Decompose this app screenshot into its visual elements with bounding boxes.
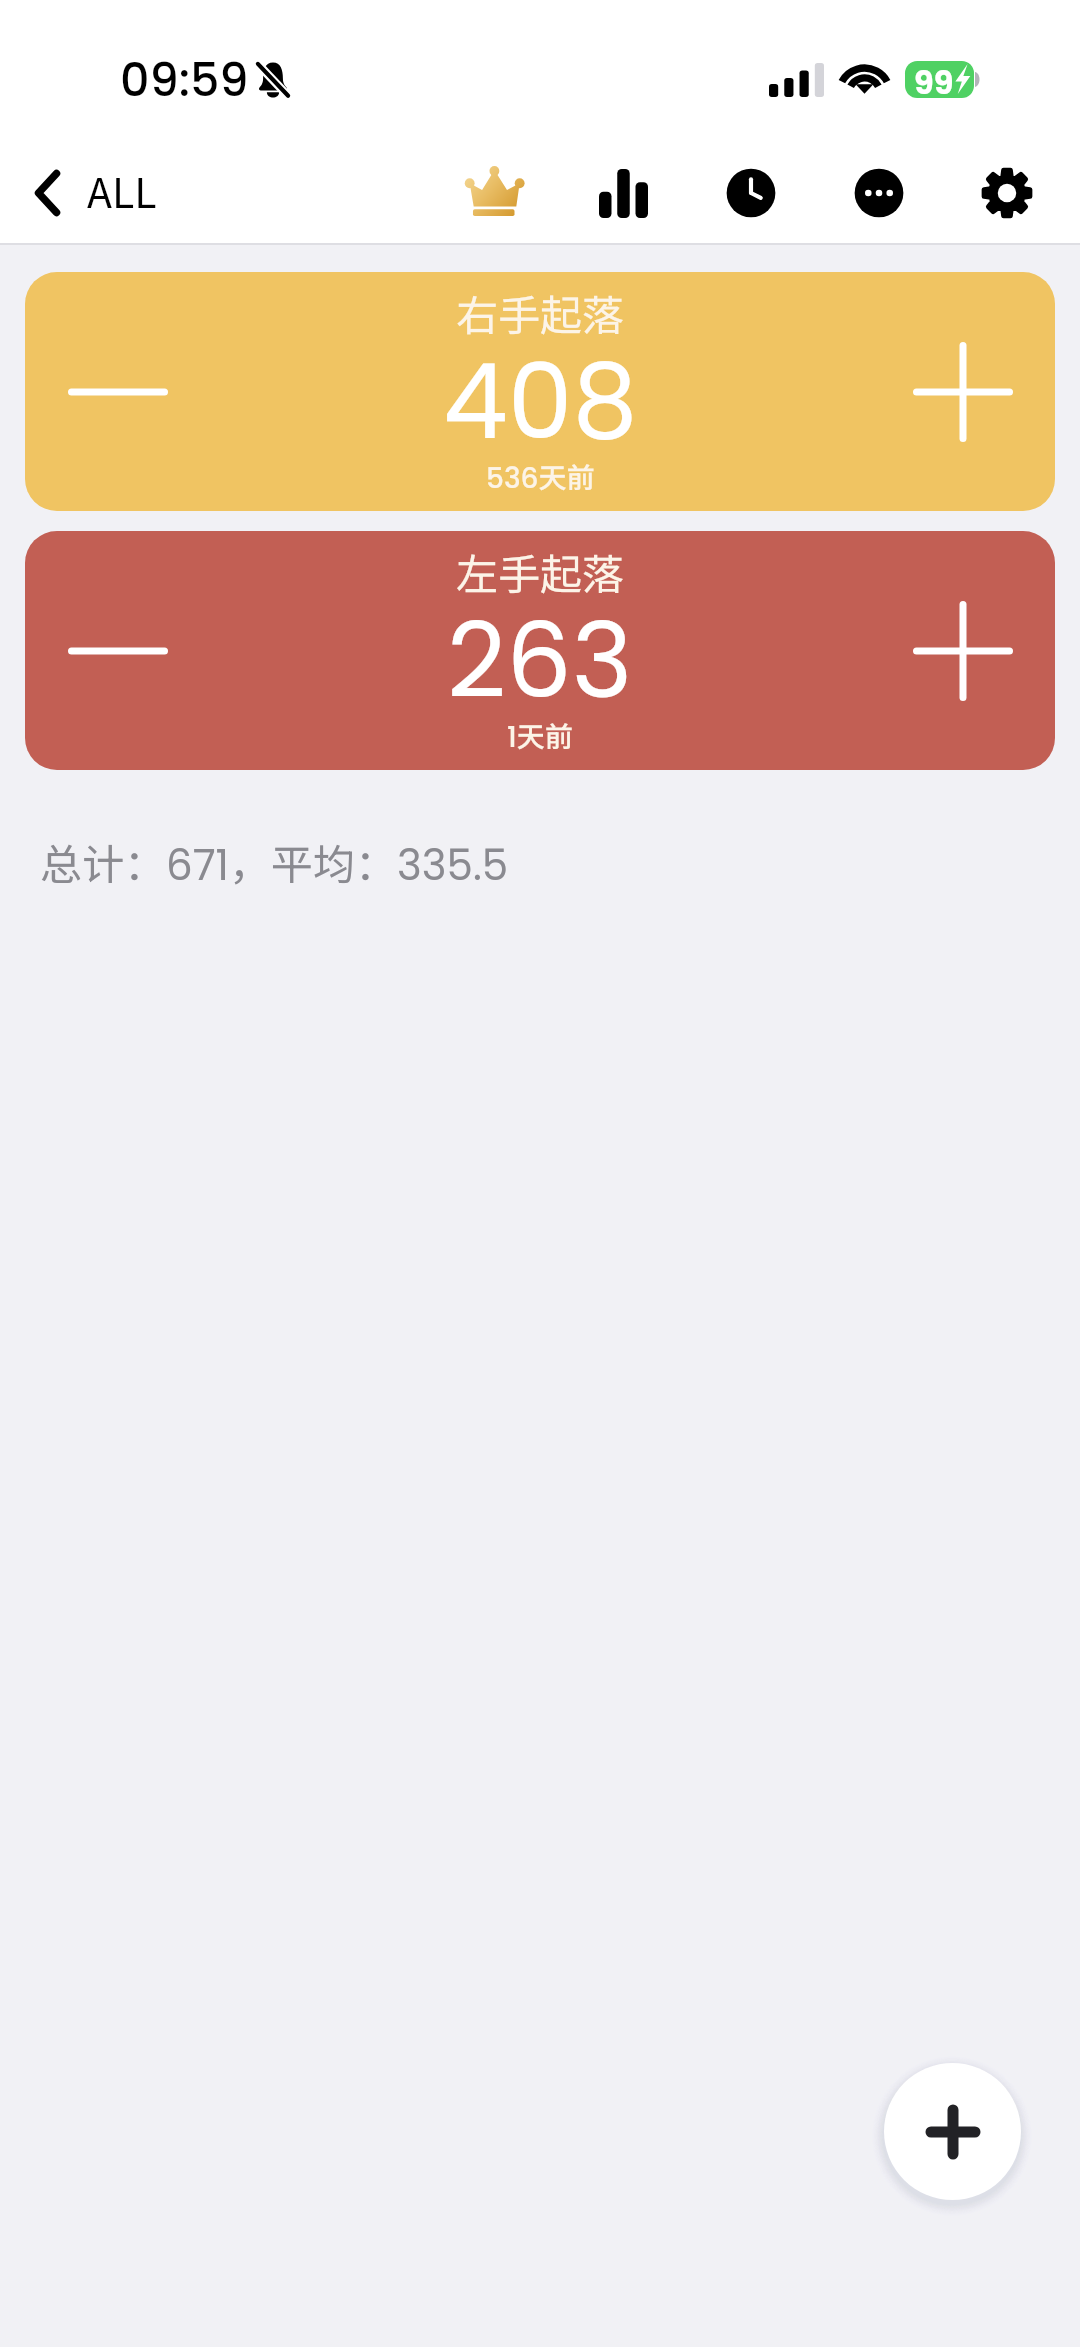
button[interactable]: ALL — [0, 145, 173, 241]
button[interactable]: Statistics — [582, 152, 664, 234]
staticText: 408 — [443, 330, 638, 474]
staticText: ALL — [87, 160, 157, 219]
staticText: 右手起落 — [456, 282, 625, 343]
button[interactable]: History — [710, 152, 792, 234]
button[interactable]: Decrement — [53, 586, 183, 716]
staticText: 09:59 — [120, 48, 249, 112]
staticText: 总计：671，平均：335.5 — [40, 831, 509, 894]
staticText: 263 — [447, 589, 633, 733]
button[interactable]: 左手起落 — [25, 531, 1055, 770]
button[interactable]: Increment — [898, 327, 1028, 457]
staticText: 536天前 — [486, 456, 595, 498]
button[interactable]: Premium — [454, 149, 536, 231]
button[interactable]: Settings — [966, 152, 1048, 234]
button[interactable]: Increment — [898, 586, 1028, 716]
staticText: 左手起落 — [456, 541, 625, 602]
button[interactable]: More — [838, 152, 920, 234]
staticText: 99 — [914, 60, 954, 97]
button[interactable]: 右手起落 — [25, 272, 1055, 511]
staticText: 1天前 — [507, 715, 573, 757]
button[interactable]: Add — [884, 2063, 1021, 2200]
button[interactable]: Decrement — [53, 327, 183, 457]
